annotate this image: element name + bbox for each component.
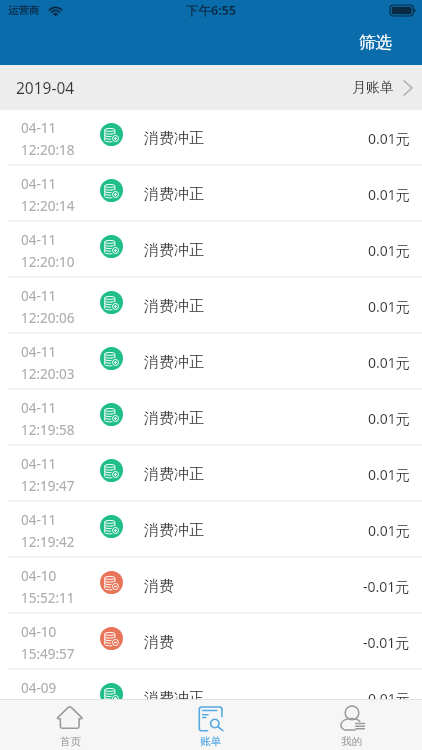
button[interactable]: 筛选 xyxy=(347,28,404,57)
staticText: 月账单 xyxy=(352,79,394,97)
staticText: 12:20:14 xyxy=(21,197,75,215)
button[interactable]: 04-11 xyxy=(0,502,422,558)
staticText: 0.01元 xyxy=(368,353,410,372)
staticText: 12:19:47 xyxy=(21,477,75,495)
button[interactable]: 04-11 xyxy=(0,222,422,278)
staticText: 消费 xyxy=(144,577,174,596)
staticText: 0.01元 xyxy=(368,689,410,699)
staticText: 12:19:58 xyxy=(21,421,75,439)
staticText: 消费冲正 xyxy=(144,521,204,540)
button[interactable]: 2019-04 xyxy=(0,65,422,110)
staticText: 消费冲正 xyxy=(144,353,204,372)
staticText: 消费冲正 xyxy=(144,689,204,699)
staticText: -0.01元 xyxy=(363,633,410,652)
button[interactable]: Home xyxy=(0,700,140,750)
staticText: 2019-04 xyxy=(16,77,75,98)
button[interactable]: 04-11 xyxy=(0,166,422,222)
staticText: 消费冲正 xyxy=(144,185,204,204)
button[interactable]: 04-10 xyxy=(0,558,422,614)
button[interactable]: Profile xyxy=(281,700,422,750)
staticText: 12:20:10 xyxy=(21,253,75,271)
button[interactable]: 04-11 xyxy=(0,334,422,390)
staticText: 0.01元 xyxy=(368,241,410,260)
staticText: 12:20:06 xyxy=(21,309,75,327)
staticText: 0.01元 xyxy=(368,297,410,316)
staticText: 0.01元 xyxy=(368,409,410,428)
staticText: 0.01元 xyxy=(368,465,410,484)
staticText: 04-11 xyxy=(21,343,57,361)
staticText: 15:49:57 xyxy=(21,645,75,663)
staticText: 04-10 xyxy=(21,567,57,585)
staticText: 运营商 xyxy=(8,4,40,17)
staticText: 消费冲正 xyxy=(144,129,204,148)
staticText: 下午6:55 xyxy=(186,2,236,19)
staticText: 消费 xyxy=(144,633,174,652)
button[interactable]: 04-11 xyxy=(0,446,422,502)
staticText: 筛选 xyxy=(359,32,392,53)
button[interactable]: 04-09 xyxy=(0,670,422,699)
staticText: 04-09 xyxy=(21,679,57,697)
button[interactable]: 04-10 xyxy=(0,614,422,670)
other: Bills xyxy=(198,706,224,732)
button[interactable]: 04-11 xyxy=(0,110,422,166)
staticText: 0.01元 xyxy=(368,521,410,540)
button[interactable]: Bills xyxy=(140,700,281,750)
staticText: 12:19:42 xyxy=(21,533,75,551)
staticText: 04-11 xyxy=(21,119,57,137)
button[interactable]: 04-11 xyxy=(0,390,422,446)
staticText: 0.01元 xyxy=(368,185,410,204)
staticText: 04-11 xyxy=(21,399,57,417)
staticText: 首页 xyxy=(60,735,81,748)
staticText: 04-11 xyxy=(21,175,57,193)
staticText: 04-11 xyxy=(21,511,57,529)
staticText: 15:52:11 xyxy=(21,589,75,607)
staticText: 消费冲正 xyxy=(144,465,204,484)
staticText: 消费冲正 xyxy=(144,241,204,260)
staticText: 消费冲正 xyxy=(144,409,204,428)
staticText: 消费冲正 xyxy=(144,297,204,316)
staticText: 0.01元 xyxy=(368,129,410,148)
button[interactable]: 04-11 xyxy=(0,278,422,334)
staticText: 12:20:03 xyxy=(21,365,75,383)
staticText: 04-11 xyxy=(21,455,57,473)
other: Home xyxy=(57,706,83,732)
staticText: 04-11 xyxy=(21,287,57,305)
staticText: 04-10 xyxy=(21,623,57,641)
staticText: -0.01元 xyxy=(363,577,410,596)
staticText: 账单 xyxy=(200,735,221,748)
staticText: 12:20:18 xyxy=(21,141,75,159)
staticText: 04-11 xyxy=(21,231,57,249)
staticText: 我的 xyxy=(341,735,362,748)
other: Profile xyxy=(339,706,365,732)
